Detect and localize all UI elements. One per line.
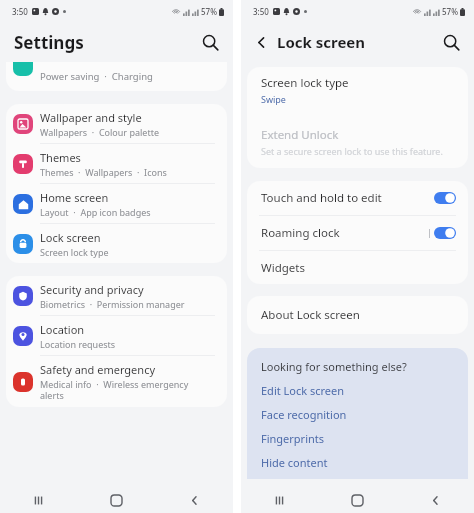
- staticText: 57%: [201, 6, 217, 17]
- button[interactable]: Wallpaper and style: [6, 104, 227, 143]
- staticText: Roaming clock: [261, 225, 429, 241]
- staticText: 3:50: [253, 6, 269, 17]
- staticText: Safety and emergency: [40, 362, 156, 377]
- staticText: Set a secure screen lock to use this fea…: [261, 145, 443, 157]
- staticText: Hide content: [261, 455, 328, 470]
- button[interactable]: About Lock screen: [247, 296, 468, 334]
- staticText: Location requests: [40, 338, 116, 350]
- button[interactable]: Edit Lock screen: [261, 383, 345, 398]
- button[interactable]: Touch and hold to edit: [247, 181, 468, 215]
- staticText: Fingerprints: [261, 431, 325, 446]
- staticText: Power saving · Charging: [40, 70, 153, 83]
- button[interactable]: Safety and emergency: [6, 356, 227, 407]
- button[interactable]: Face recognition: [261, 407, 347, 422]
- button[interactable]: Recent apps: [0, 488, 77, 513]
- staticText: Screen lock type: [40, 246, 109, 258]
- staticText: Security and privacy: [40, 282, 144, 297]
- staticText: 57%: [442, 6, 458, 17]
- staticText: Biometrics · Permission manager: [40, 298, 185, 310]
- button[interactable]: Extend Unlock: [247, 121, 468, 168]
- staticText: About Lock screen: [261, 307, 360, 323]
- button[interactable]: Back: [155, 488, 233, 513]
- staticText: Wallpaper and style: [40, 110, 142, 125]
- button[interactable]: Back: [396, 488, 474, 513]
- button[interactable]: Roaming clock: [247, 216, 468, 250]
- staticText: Layout · App icon badges: [40, 206, 151, 218]
- staticText: Screen lock type: [261, 75, 349, 91]
- staticText: 3:50: [12, 6, 28, 17]
- staticText: Looking for something else?: [261, 359, 407, 374]
- button[interactable]: Widgets: [247, 251, 468, 284]
- button[interactable]: Location: [6, 316, 227, 355]
- staticText: Lock screen: [40, 230, 101, 245]
- button[interactable]: Search: [199, 31, 221, 53]
- staticText: Widgets: [261, 260, 305, 276]
- button[interactable]: Back: [251, 32, 271, 52]
- button[interactable]: Hide content: [261, 455, 328, 470]
- button[interactable]: Recent apps: [241, 488, 318, 513]
- button[interactable]: Home: [318, 488, 396, 513]
- button[interactable]: Power saving · Charging: [6, 62, 227, 91]
- staticText: Wallpapers · Colour palette: [40, 126, 159, 138]
- button[interactable]: Home screen: [6, 184, 227, 223]
- staticText: Settings: [14, 31, 84, 54]
- staticText: Touch and hold to edit: [261, 190, 434, 206]
- button[interactable]: Fingerprints: [261, 431, 325, 446]
- staticText: Themes · Wallpapers · Icons: [40, 166, 167, 178]
- button[interactable]: Screen lock type: [247, 67, 468, 113]
- button[interactable]: Lock screen: [6, 224, 227, 263]
- staticText: Edit Lock screen: [261, 383, 345, 398]
- button[interactable]: Search: [440, 31, 462, 53]
- staticText: Themes: [40, 150, 81, 165]
- staticText: Medical info · Wireless emergency alerts: [40, 378, 189, 401]
- staticText: Location: [40, 322, 85, 337]
- staticText: Swipe: [261, 93, 286, 105]
- button[interactable]: Home: [77, 488, 155, 513]
- button[interactable]: Security and privacy: [6, 276, 227, 315]
- staticText: Lock screen: [277, 32, 366, 52]
- button[interactable]: Themes: [6, 144, 227, 183]
- staticText: Home screen: [40, 190, 109, 205]
- staticText: Extend Unlock: [261, 127, 339, 143]
- staticText: Face recognition: [261, 407, 347, 422]
